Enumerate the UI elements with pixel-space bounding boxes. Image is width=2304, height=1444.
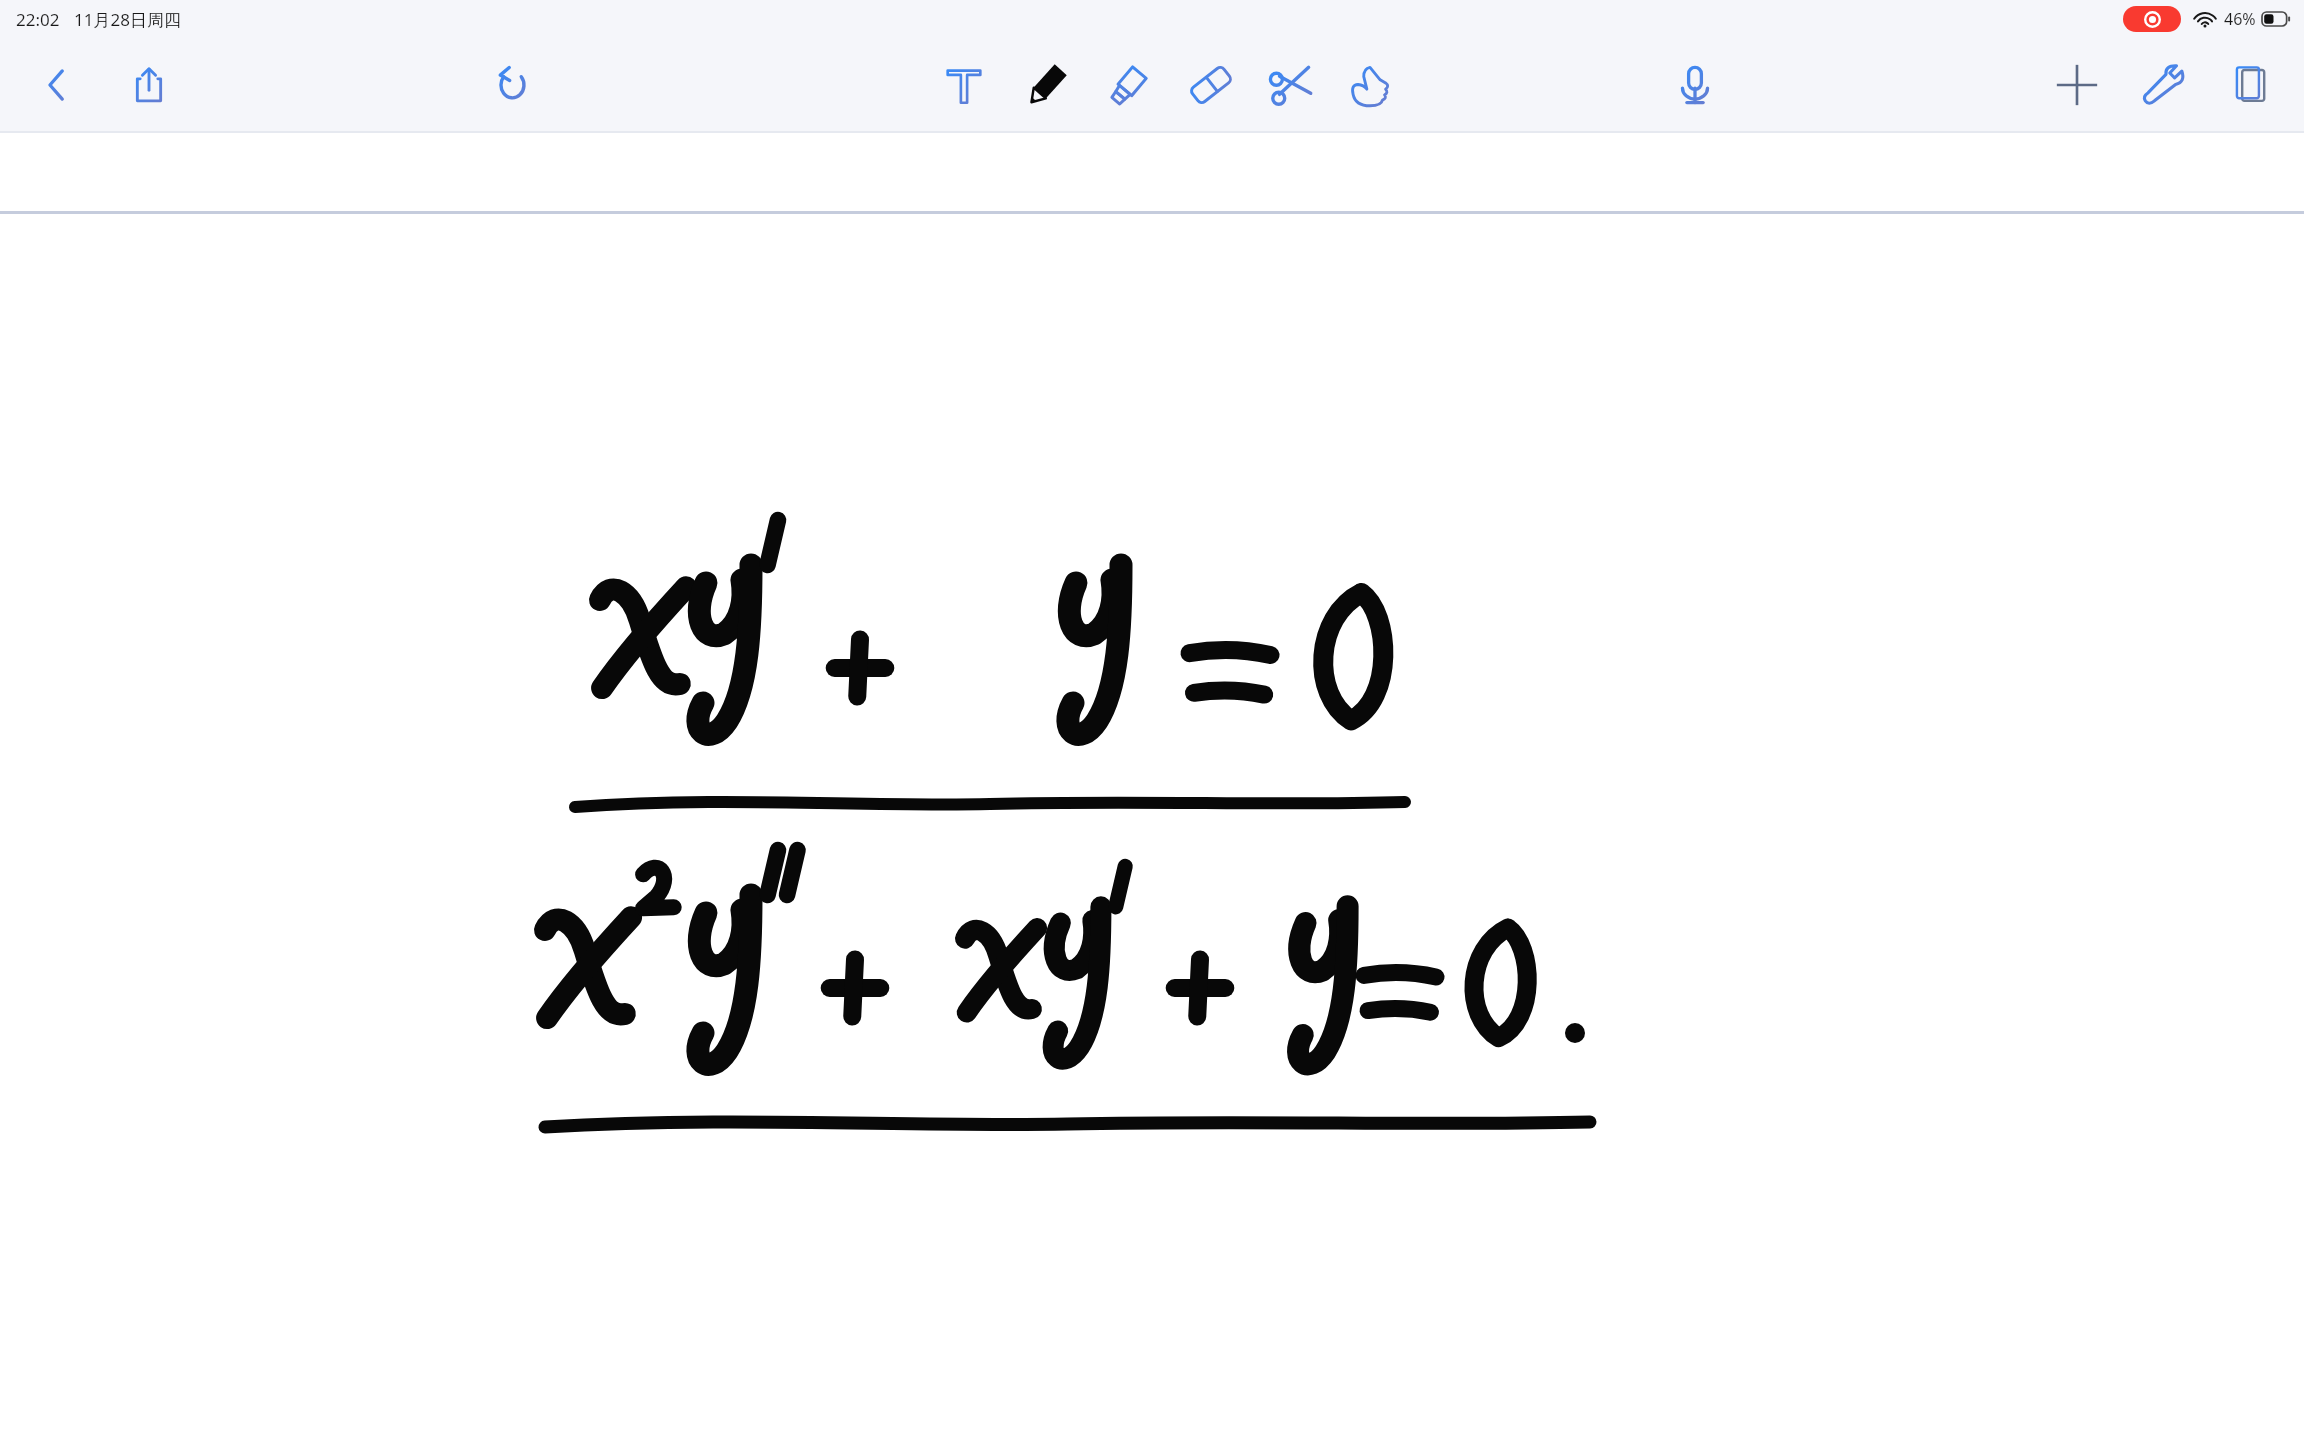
button[interactable]: Eraser — [1175, 49, 1247, 121]
staticText: 22:02 — [16, 8, 60, 31]
staticText: 46% — [2224, 8, 2256, 30]
button[interactable]: Cut — [1257, 50, 1327, 120]
staticText: 11月28日周四 — [74, 8, 181, 31]
button[interactable]: Highlighter — [1093, 49, 1165, 121]
button[interactable]: Text tool — [931, 52, 997, 118]
button[interactable]: Pages — [2220, 54, 2282, 116]
button[interactable]: Select — [1335, 50, 1405, 120]
button[interactable]: Settings — [2132, 52, 2198, 118]
button[interactable]: Add — [2044, 52, 2110, 118]
button[interactable]: Pen tool — [1011, 49, 1083, 121]
button[interactable]: Undo — [480, 53, 544, 117]
button[interactable]: Microphone — [1664, 54, 1726, 116]
button[interactable]: Back — [26, 54, 88, 116]
button[interactable]: Share — [118, 54, 180, 116]
